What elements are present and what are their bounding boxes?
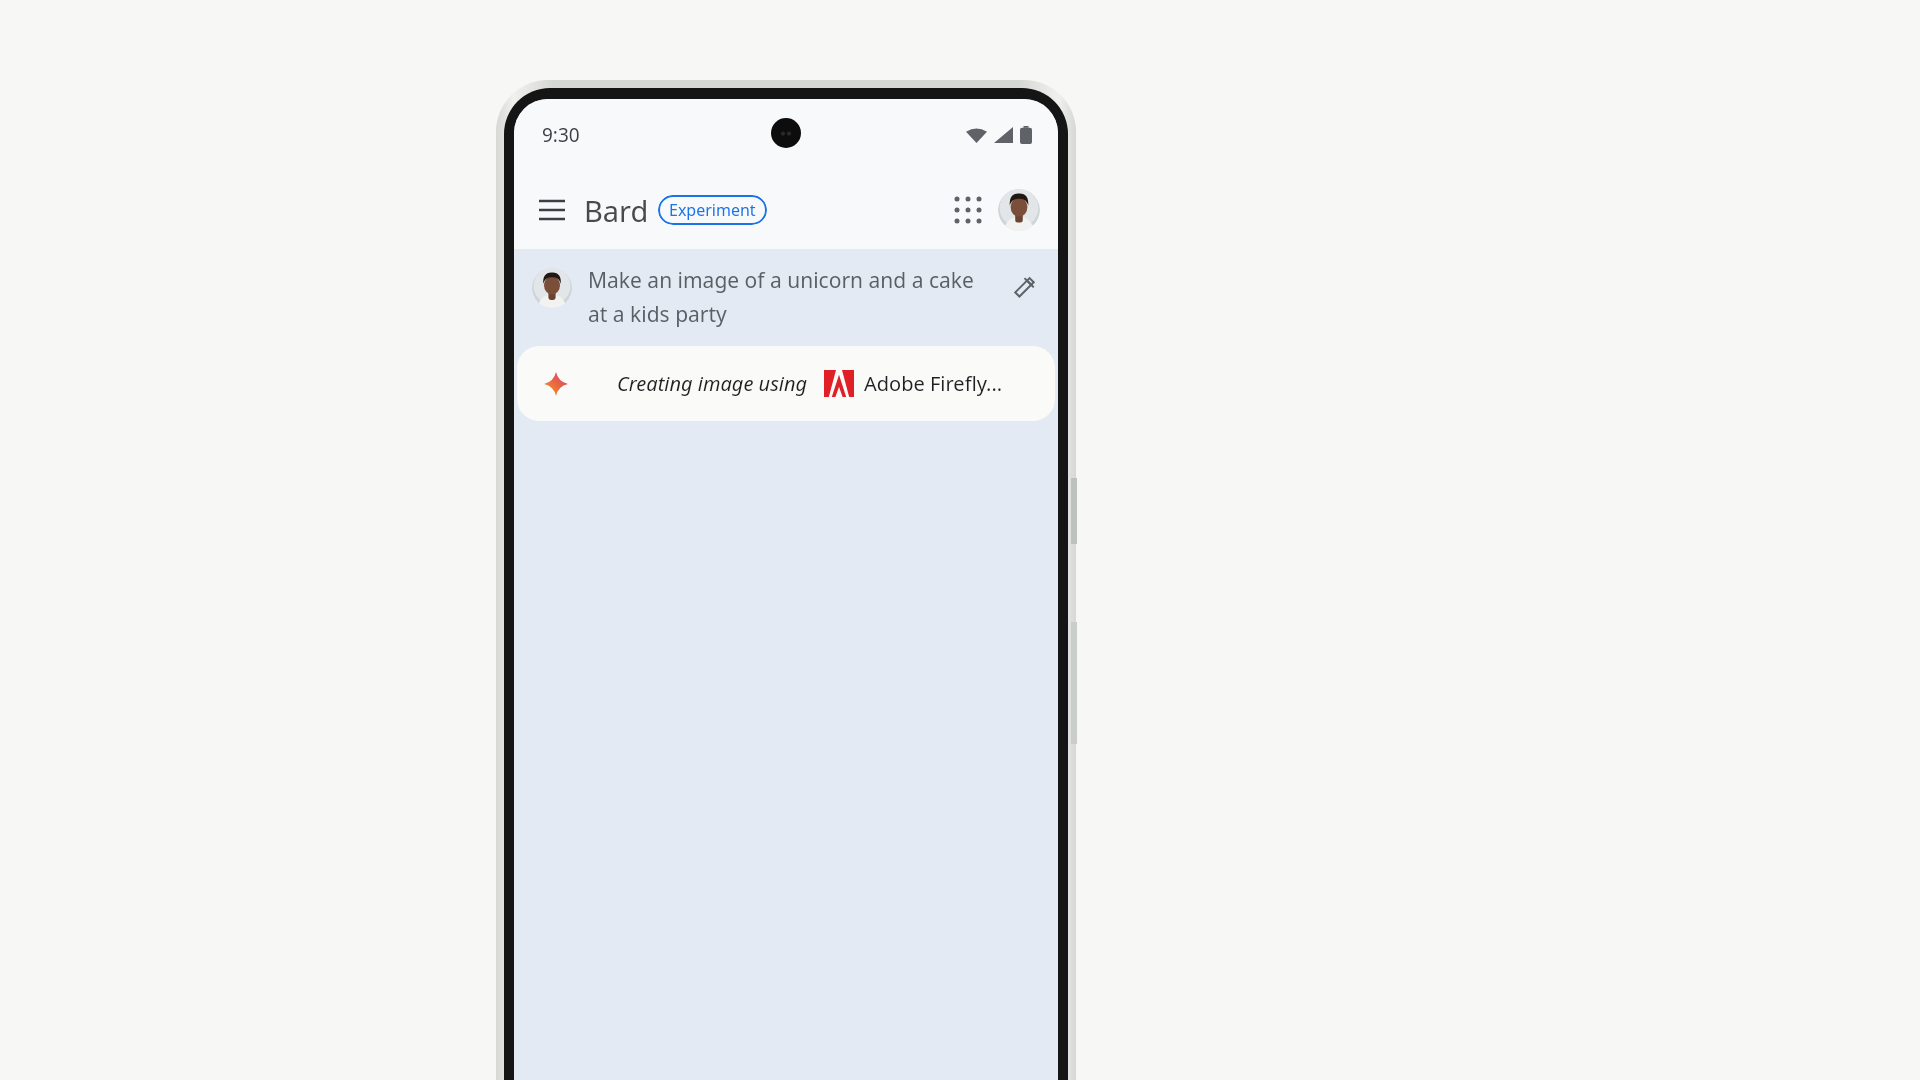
staticText: Creating image using xyxy=(617,370,808,397)
button[interactable]: Experiment xyxy=(658,195,767,225)
staticText: Adobe Firefly... xyxy=(864,370,1003,397)
button[interactable]: Bard xyxy=(584,191,649,230)
button[interactable]: Google apps xyxy=(944,186,992,234)
button[interactable]: Make an image of a unicorn and a cake at… xyxy=(514,250,1058,346)
staticText: Experiment xyxy=(669,199,756,221)
staticText: Make an image of a unicorn and a cake at… xyxy=(588,266,996,328)
button[interactable]: Creating image using xyxy=(517,346,1055,421)
button[interactable]: Open navigation menu xyxy=(528,186,576,234)
button[interactable]: Account profile xyxy=(998,189,1040,231)
button[interactable]: Edit prompt xyxy=(1006,268,1042,304)
staticText: 9:30 xyxy=(542,122,580,148)
